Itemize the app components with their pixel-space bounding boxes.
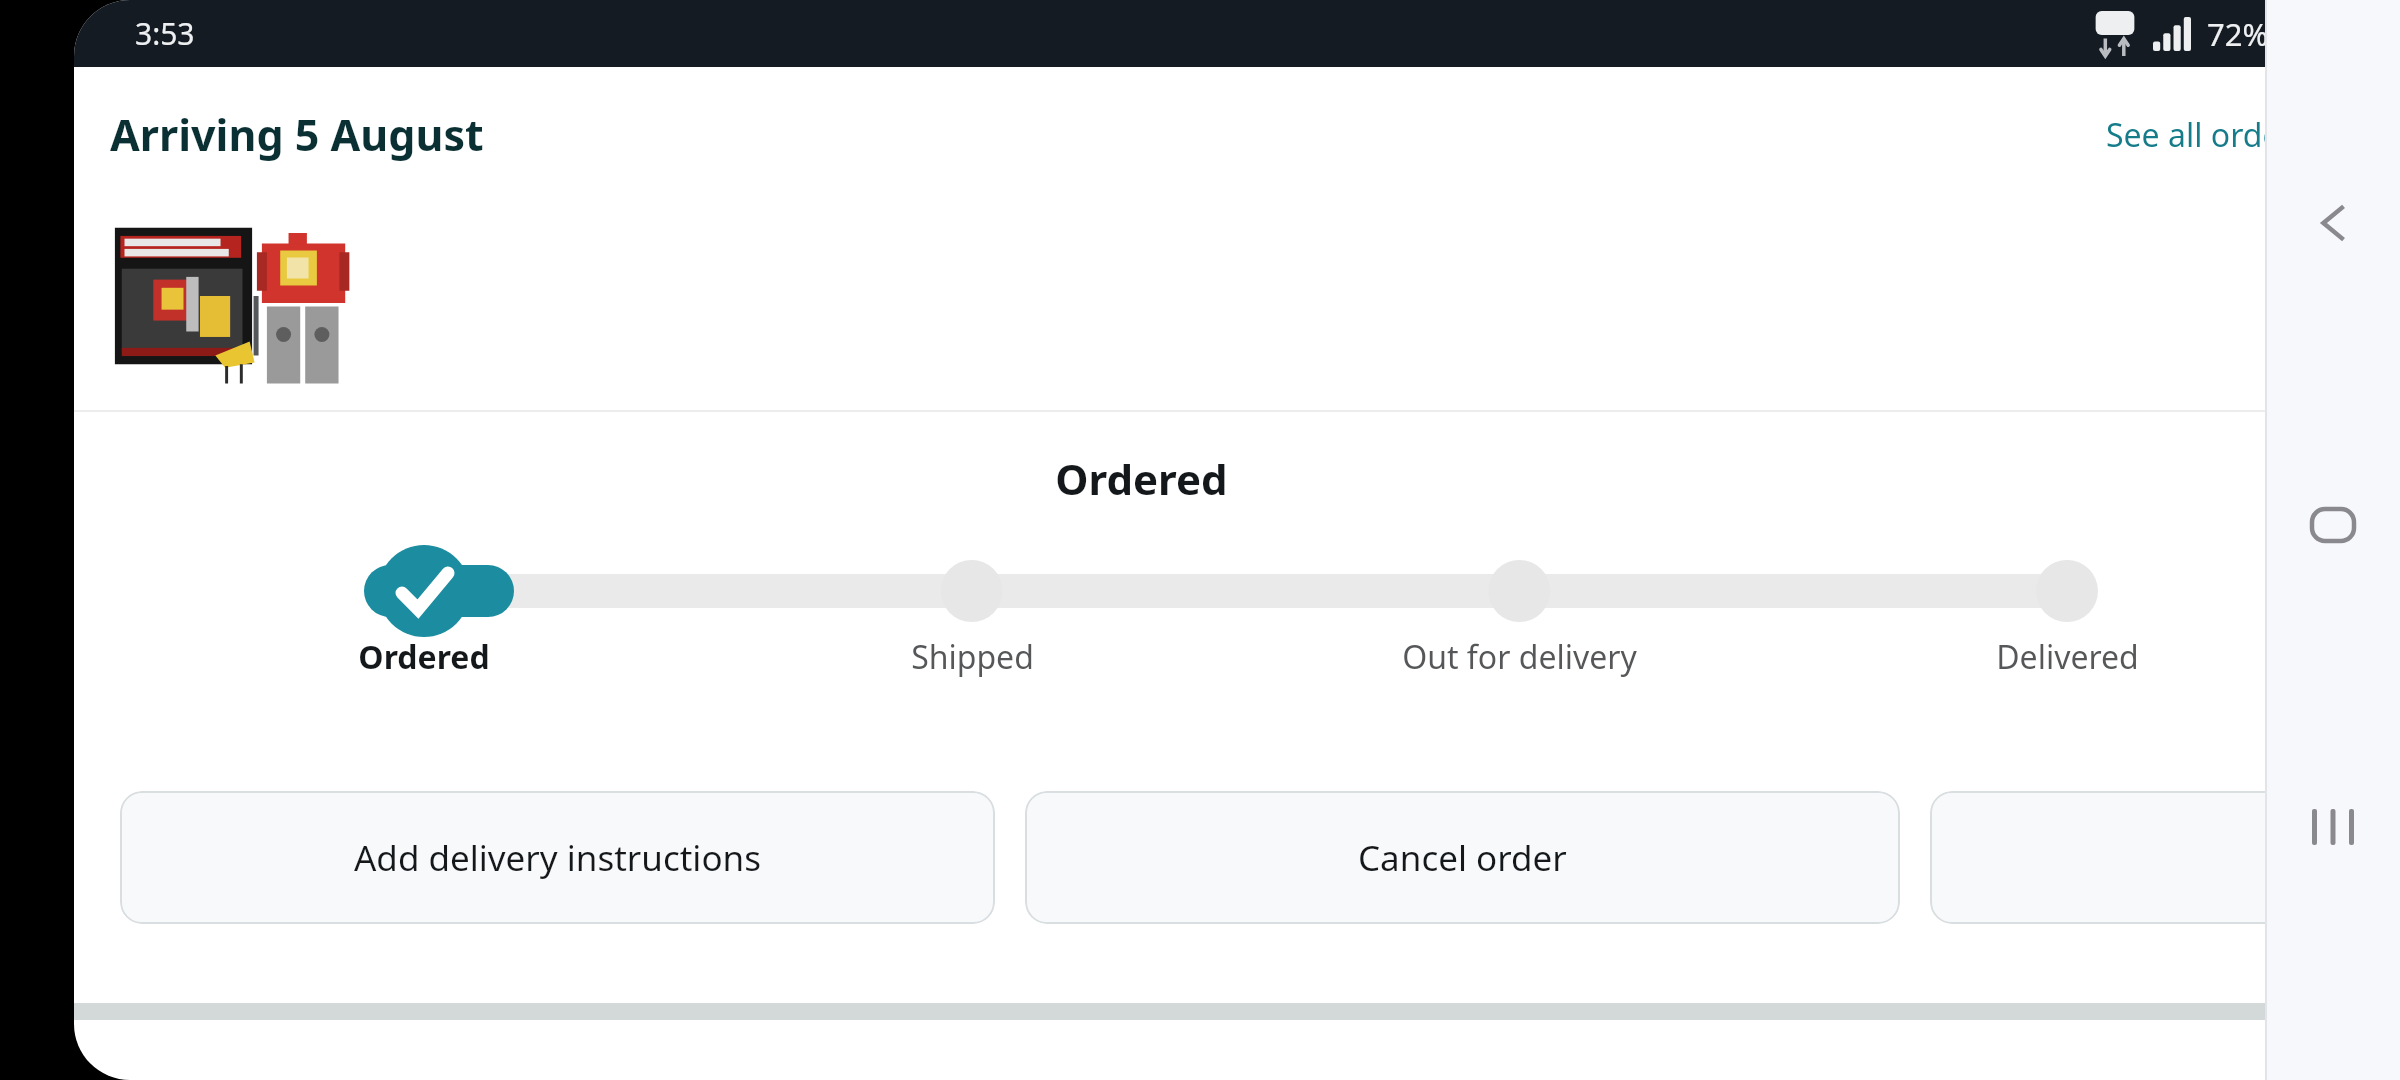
button[interactable]: Back — [2285, 175, 2381, 271]
staticText: 3:53 — [135, 13, 195, 54]
staticText: Cancel order — [1358, 834, 1567, 882]
button[interactable]: Out for delivery — [1259, 635, 1779, 679]
staticText: Delivered — [1996, 635, 2139, 679]
button[interactable]: Home — [2285, 477, 2381, 573]
button[interactable]: Recents — [2285, 779, 2381, 875]
staticText: Ordered — [74, 450, 2209, 507]
button[interactable]: Delivered — [1807, 635, 2327, 679]
staticText: Arriving 5 August — [110, 105, 484, 164]
staticText: Ordered — [358, 635, 490, 679]
button[interactable]: More options — [1930, 791, 2330, 924]
staticText: See all orders — [2106, 113, 2309, 157]
button[interactable]: Ordered — [164, 635, 684, 679]
staticText: Out for delivery — [1402, 635, 1637, 679]
button[interactable]: Add delivery instructions — [120, 791, 995, 924]
button[interactable]: Cancel order — [1025, 791, 1900, 924]
staticText: Shipped — [911, 635, 1034, 679]
button[interactable]: Shipped — [712, 635, 1232, 679]
staticText: Add delivery instructions — [354, 834, 761, 882]
staticText: 72% — [2207, 13, 2269, 55]
button[interactable]: Transformers order item — [110, 219, 355, 394]
button[interactable]: See all orders — [2094, 103, 2321, 167]
